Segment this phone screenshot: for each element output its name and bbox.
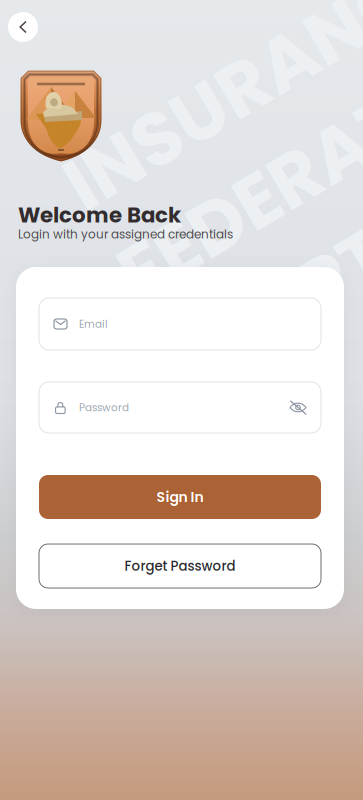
staticText: Login with your assigned credentials <box>18 226 233 243</box>
button[interactable]: Sign In <box>39 475 321 519</box>
button[interactable]: Forget Password <box>39 544 321 588</box>
staticText: Sign In <box>156 487 203 507</box>
button[interactable]: Back <box>8 12 38 42</box>
staticText: Password <box>79 400 129 415</box>
staticText: Welcome Back <box>18 200 181 230</box>
staticText: Forget Password <box>124 557 235 575</box>
staticText: Email <box>79 317 108 331</box>
staticText: INSURANCE FEDERATION OF EGYPT <box>83 0 363 289</box>
